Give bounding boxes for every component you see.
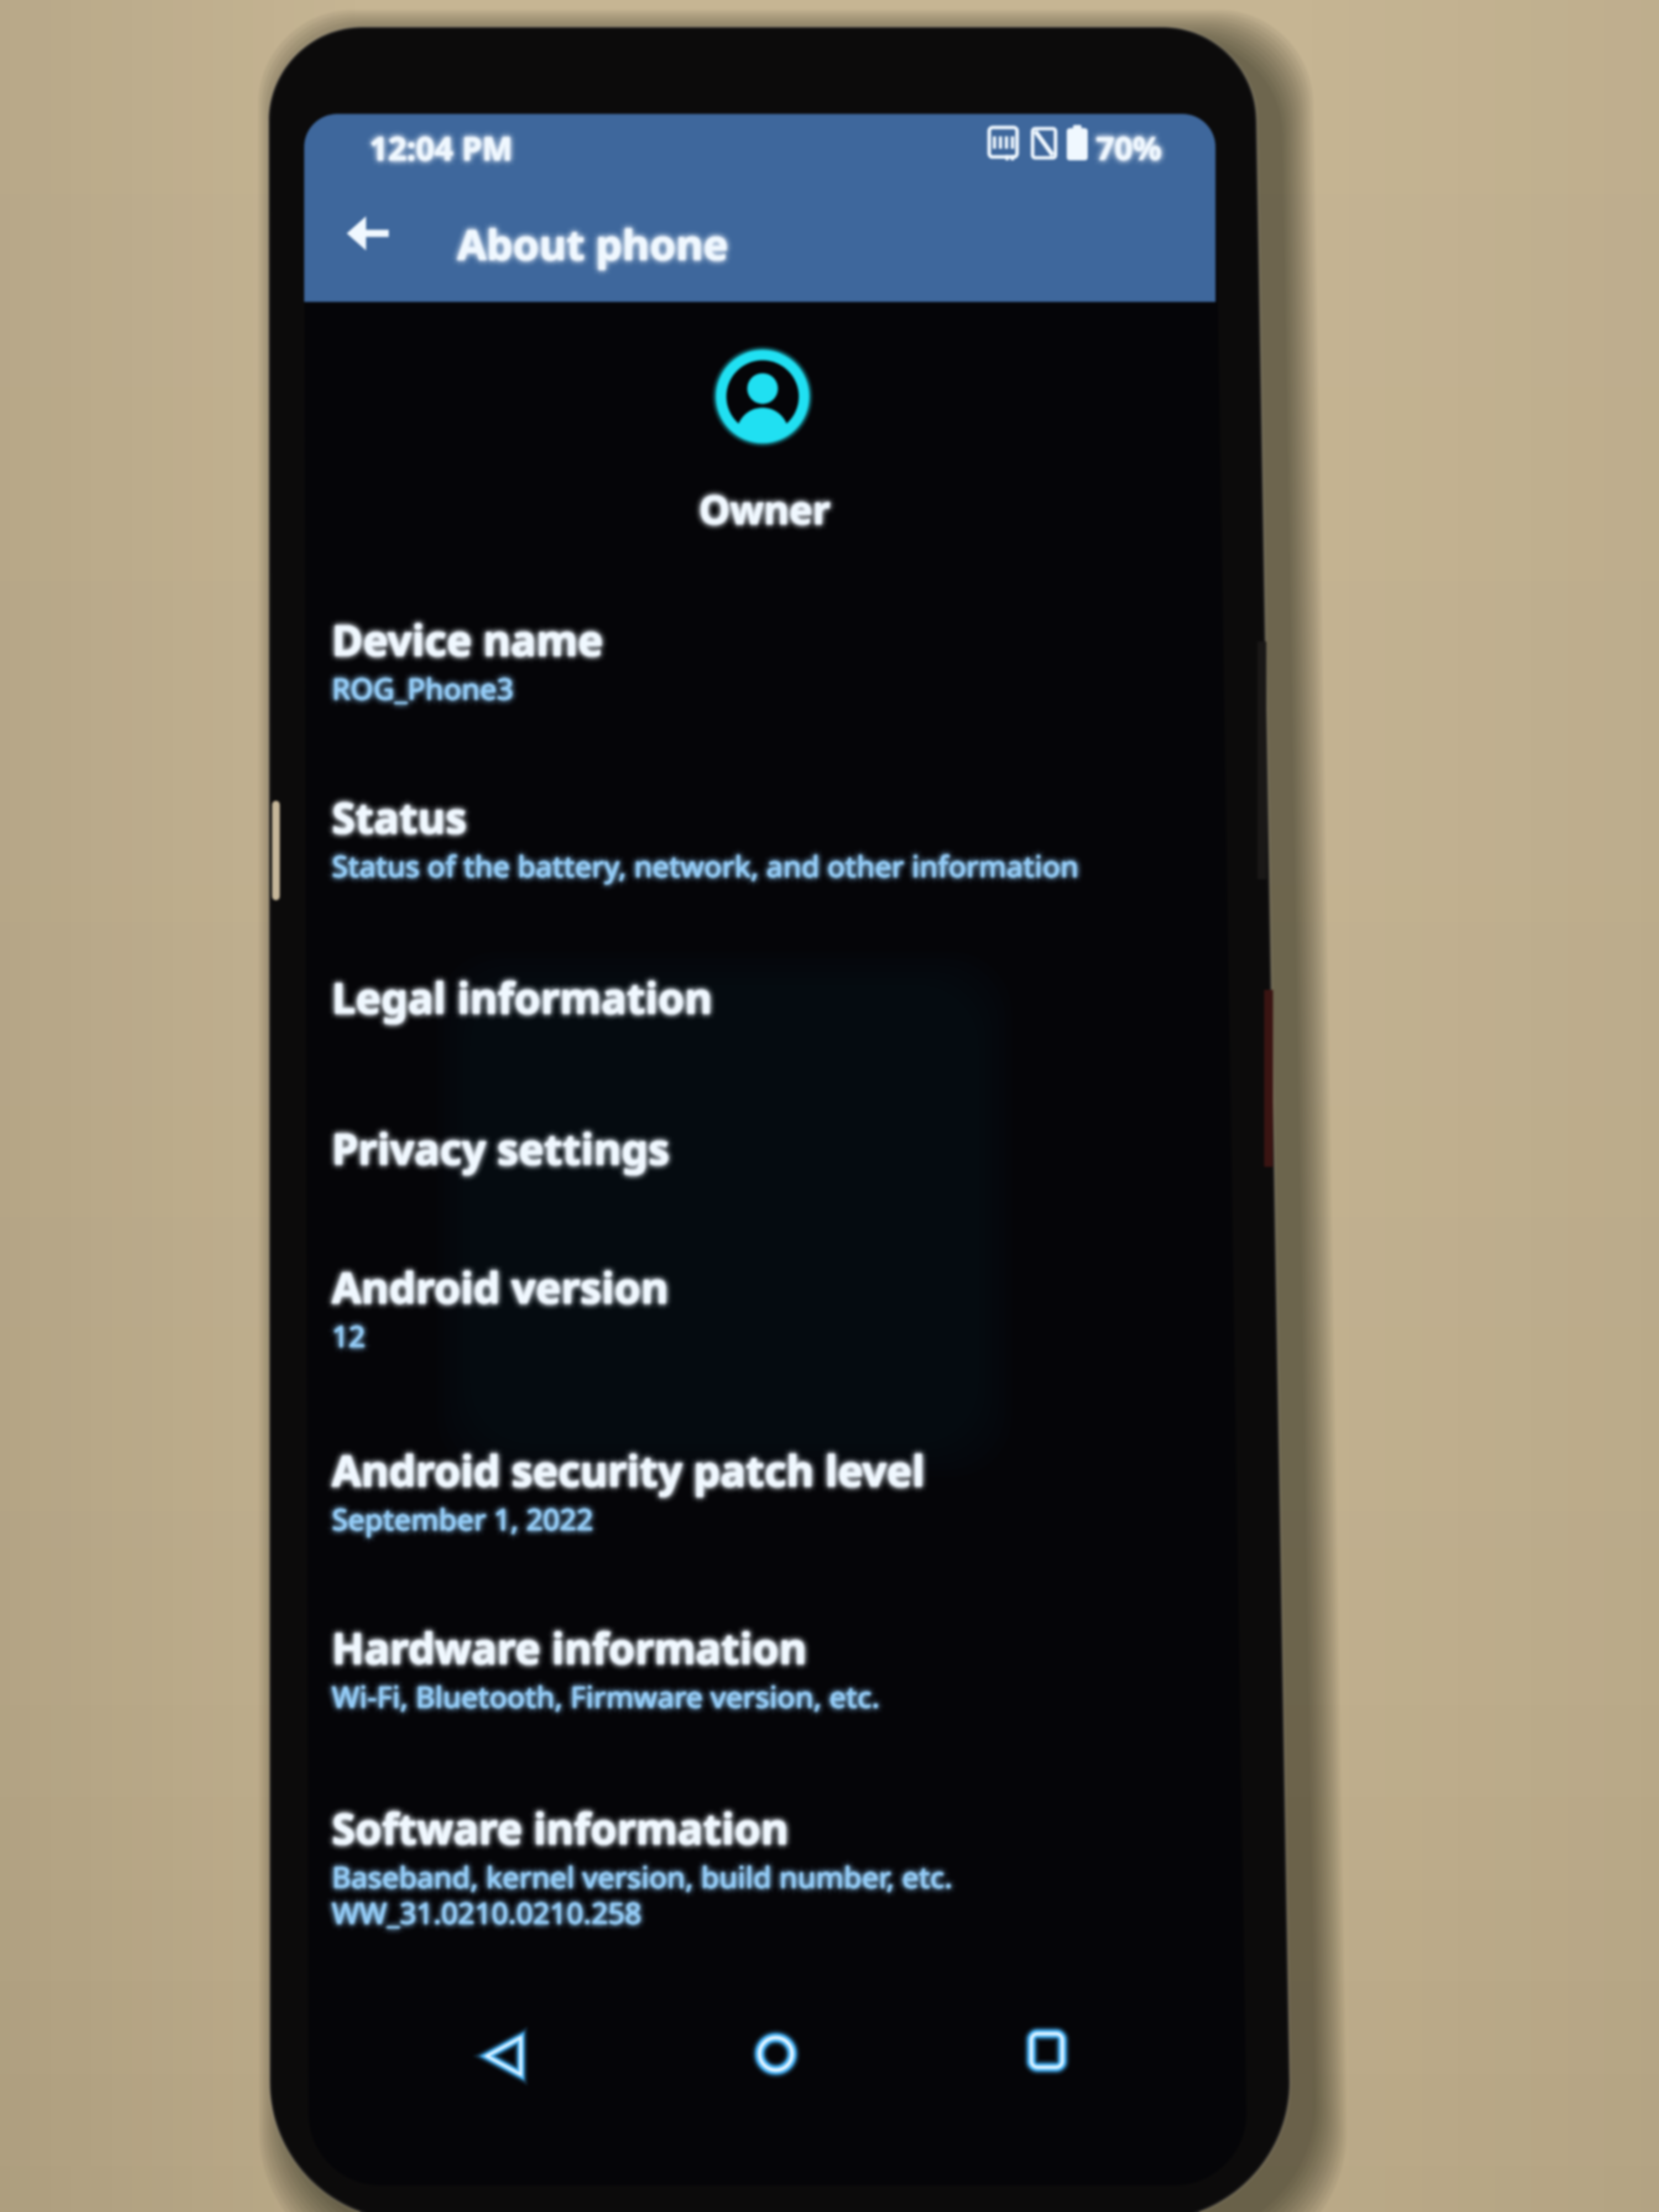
button[interactable]: Back xyxy=(326,192,409,275)
staticText: About phone xyxy=(460,215,731,273)
staticText: Hardware information xyxy=(332,1619,807,1677)
staticText: Baseband, kernel version, build number, … xyxy=(329,1854,950,1893)
staticText: Status of the battery, network, and othe… xyxy=(332,848,1079,888)
button[interactable]: Android version xyxy=(304,1239,1215,1341)
staticText: Device name xyxy=(331,611,603,669)
staticText: 70% xyxy=(1100,126,1166,169)
staticText: Owner xyxy=(700,482,832,536)
staticText: September 1, 2022 xyxy=(332,1496,593,1536)
staticText: Owner xyxy=(701,484,832,538)
staticText: Android security patch level xyxy=(327,1437,921,1495)
staticText: 70% xyxy=(1092,121,1157,165)
button[interactable]: Privacy settings xyxy=(304,1100,1215,1166)
staticText: Status of the battery, network, and othe… xyxy=(335,843,1082,883)
staticText: Hardware information xyxy=(332,1618,807,1676)
staticText: About phone xyxy=(455,218,726,275)
staticText: Android version xyxy=(330,1260,667,1318)
staticText: 70% xyxy=(1096,124,1162,168)
staticText: 12:04 PM xyxy=(372,126,515,170)
button[interactable]: Recent apps xyxy=(1003,2006,1091,2095)
staticText: WW_31.0210.0210.258 xyxy=(327,1888,638,1928)
button[interactable]: Android security patch level xyxy=(304,1422,1215,1524)
staticText: About phone xyxy=(458,216,729,273)
button[interactable]: Hardware information xyxy=(304,1600,1215,1702)
staticText: ROG_Phone3 xyxy=(332,666,514,706)
staticText: Hardware information xyxy=(334,1619,809,1677)
staticText: ROG_Phone3 xyxy=(329,671,511,711)
staticText: 12:04 PM xyxy=(369,128,513,172)
staticText: Legal information xyxy=(336,964,717,1022)
staticText: Android security patch level xyxy=(336,1446,930,1504)
staticText: Device name xyxy=(333,611,604,669)
staticText: Android security patch level xyxy=(332,1435,925,1493)
staticText: Privacy settings xyxy=(336,1119,674,1177)
staticText: September 1, 2022 xyxy=(332,1505,593,1545)
staticText: 12 xyxy=(332,1312,366,1352)
staticText: Software information xyxy=(329,1802,786,1860)
staticText: 70% xyxy=(1096,119,1162,163)
staticText: Baseband, kernel version, build number, … xyxy=(332,1860,953,1900)
staticText: September 1, 2022 xyxy=(332,1500,593,1540)
staticText: WW_31.0210.0210.258 xyxy=(332,1892,642,1932)
staticText: Android security patch level xyxy=(332,1443,925,1501)
button[interactable]: Owner account xyxy=(653,337,874,536)
staticText: Legal information xyxy=(332,968,713,1026)
staticText: 12 xyxy=(329,1318,363,1358)
staticText: Software information xyxy=(330,1797,787,1855)
staticText: Status of the battery, network, and othe… xyxy=(332,844,1079,884)
staticText: Status xyxy=(331,787,467,846)
staticText: Legal information xyxy=(338,968,718,1026)
staticText: Legal information xyxy=(335,971,715,1029)
staticText: Owner xyxy=(698,483,830,536)
staticText: Hardware information xyxy=(336,1614,811,1672)
button[interactable]: Back xyxy=(460,2012,548,2100)
staticText: Status of the battery, network, and othe… xyxy=(332,849,1079,889)
staticText: Legal information xyxy=(332,962,712,1020)
staticText: ROG_Phone3 xyxy=(327,664,509,703)
staticText: Owner xyxy=(699,480,831,534)
staticText: 12 xyxy=(332,1318,366,1358)
staticText: 70% xyxy=(1097,125,1162,169)
staticText: September 1, 2022 xyxy=(328,1499,589,1538)
staticText: Status xyxy=(331,788,466,846)
staticText: Android version xyxy=(328,1258,665,1316)
staticText: Wi-Fi, Bluetooth, Firmware version, etc. xyxy=(329,1679,877,1719)
button[interactable]: Software information xyxy=(304,1780,1215,1918)
staticText: Privacy settings xyxy=(335,1122,672,1180)
staticText: 12 xyxy=(331,1315,365,1355)
button[interactable]: Home xyxy=(732,2010,820,2098)
staticText: Owner xyxy=(703,482,834,536)
button[interactable]: Device name xyxy=(304,592,1215,693)
staticText: Hardware information xyxy=(329,1621,804,1679)
staticText: WW_31.0210.0210.258 xyxy=(329,1895,639,1935)
staticText: 70% xyxy=(1096,122,1162,165)
button[interactable]: Status xyxy=(304,769,1215,871)
staticText: Device name xyxy=(327,606,599,664)
staticText: WW_31.0210.0210.258 xyxy=(333,1891,644,1931)
staticText: 12:04 PM xyxy=(366,126,509,170)
staticText: Android security patch level xyxy=(336,1441,929,1499)
staticText: ROG_Phone3 xyxy=(329,665,511,705)
staticText: Status xyxy=(332,787,468,846)
staticText: Privacy settings xyxy=(332,1115,670,1173)
staticText: Wi-Fi, Bluetooth, Firmware version, etc. xyxy=(326,1676,874,1716)
staticText: Device name xyxy=(333,609,605,667)
button[interactable]: Legal information xyxy=(304,950,1215,1015)
staticText: Legal information xyxy=(330,970,711,1028)
staticText: ROG_Phone3 xyxy=(331,667,513,707)
staticText: ROG_Phone3 xyxy=(334,668,516,708)
staticText: 12 xyxy=(327,1311,361,1351)
staticText: 70% xyxy=(1095,126,1161,170)
staticText: About phone xyxy=(457,213,728,270)
staticText: Software information xyxy=(335,1802,791,1860)
staticText: Baseband, kernel version, build number, … xyxy=(332,1858,953,1897)
staticText: Legal information xyxy=(327,973,708,1031)
staticText: Status xyxy=(332,782,467,840)
staticText: Device name xyxy=(333,612,605,670)
staticText: Hardware information xyxy=(333,1620,808,1678)
staticText: WW_31.0210.0210.258 xyxy=(326,1892,636,1932)
staticText: Status xyxy=(327,792,463,851)
staticText: 70% xyxy=(1099,128,1165,172)
staticText: Device name xyxy=(335,613,606,671)
staticText: Legal information xyxy=(332,966,712,1024)
